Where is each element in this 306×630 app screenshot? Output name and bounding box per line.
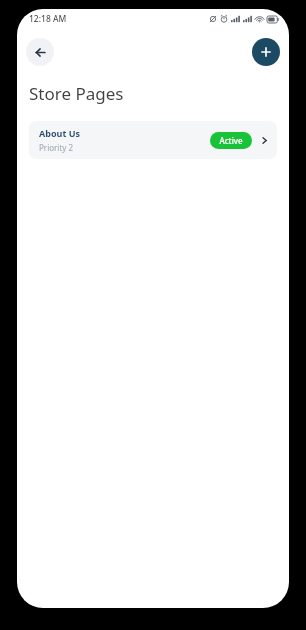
staticText: Store Pages (29, 82, 124, 105)
button[interactable]: About Us (29, 121, 277, 159)
button[interactable]: Add page (252, 38, 280, 66)
staticText: About Us (39, 127, 80, 139)
staticText: Active (219, 135, 243, 146)
staticText: 12:18 AM (29, 13, 67, 25)
button[interactable]: Back (26, 38, 54, 66)
staticText: Priority 2 (39, 142, 74, 153)
